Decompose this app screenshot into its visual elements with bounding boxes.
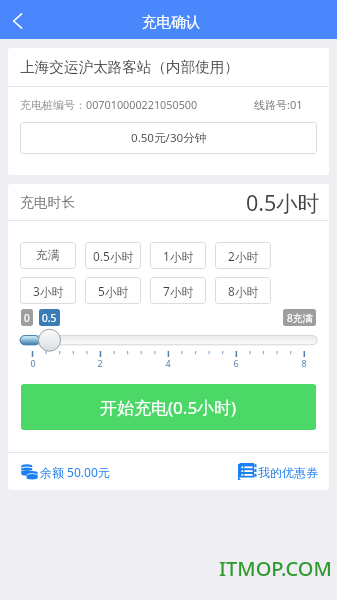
staticText: 5小时 (98, 283, 129, 299)
staticText: 0.50元/30分钟 (131, 130, 207, 146)
staticText: 2 (97, 357, 103, 369)
button[interactable]: 余额 50.00元 (21, 463, 110, 481)
button[interactable]: 0.5小时 (85, 242, 141, 269)
staticText: 充电时长 (20, 194, 76, 211)
staticText: 8充满 (287, 311, 313, 325)
staticText: 0 (24, 311, 30, 325)
button[interactable]: 3小时 (20, 277, 76, 304)
button[interactable]: 开始充电(0.5小时) (21, 384, 316, 430)
staticText: 2小时 (228, 248, 259, 264)
button[interactable]: 2小时 (215, 242, 271, 269)
button[interactable]: 我的优惠券 (238, 462, 318, 482)
staticText: 1小时 (163, 248, 194, 264)
button[interactable]: Back (0, 0, 36, 39)
button[interactable]: 充满 (20, 242, 76, 269)
staticText: 0.5 (42, 311, 57, 325)
staticText: 上海交运沪太路客站（内部使用） (20, 58, 239, 76)
staticText: 开始充电(0.5小时) (100, 396, 237, 419)
staticText: 7小时 (163, 283, 194, 299)
button[interactable]: 5小时 (85, 277, 141, 304)
staticText: 4 (165, 357, 171, 369)
staticText: 余额 50.00元 (40, 464, 110, 480)
staticText: 充电桩编号： (20, 98, 86, 112)
button[interactable]: 1小时 (150, 242, 206, 269)
button[interactable]: 7小时 (150, 277, 206, 304)
staticText: 线路号:01 (254, 97, 303, 112)
staticText: ITMOP.COM (219, 555, 332, 582)
staticText: 3小时 (33, 283, 64, 299)
staticText: 8小时 (228, 283, 259, 299)
staticText: 0.5小时 (246, 188, 320, 217)
staticText: 充电确认 (142, 13, 201, 31)
staticText: 8 (301, 357, 307, 369)
staticText: 007010000221050500 (86, 97, 198, 112)
staticText: 充满 (36, 248, 60, 263)
button[interactable]: 8小时 (215, 277, 271, 304)
staticText: 我的优惠券 (258, 465, 318, 480)
staticText: 0.5小时 (93, 248, 134, 264)
staticText: 0 (30, 357, 36, 369)
staticText: 6 (233, 357, 239, 369)
